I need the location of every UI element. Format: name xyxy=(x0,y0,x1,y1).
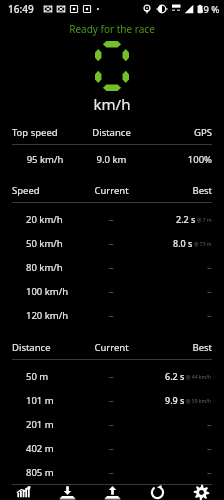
staticText: km/h xyxy=(0,94,224,114)
staticText: 101 m xyxy=(26,394,54,407)
staticText: 201 m xyxy=(26,418,54,431)
staticText: GPS xyxy=(145,126,212,139)
staticText: – xyxy=(207,309,212,321)
button[interactable]: Import xyxy=(45,485,89,500)
staticText: – xyxy=(109,418,114,430)
staticText: 9.9 s xyxy=(165,394,185,406)
staticText: 120 km/h xyxy=(26,309,69,322)
staticText: Best xyxy=(145,184,212,197)
button[interactable]: 805 m xyxy=(0,460,224,484)
staticText: – xyxy=(109,394,114,406)
staticText: – xyxy=(207,261,212,273)
button[interactable]: 402 m xyxy=(0,436,224,460)
button[interactable]: 101 m xyxy=(0,388,224,412)
staticText: Distance xyxy=(78,126,145,139)
staticText: Distance xyxy=(12,341,78,354)
staticText: – xyxy=(109,261,114,273)
staticText: 8.0 s xyxy=(173,237,193,249)
staticText: – xyxy=(109,285,114,297)
staticText: 100 km/h xyxy=(26,285,69,298)
button[interactable]: Statistics xyxy=(1,485,45,500)
button[interactable]: 50 km/h xyxy=(0,231,224,255)
staticText: Top speed xyxy=(12,126,78,139)
staticText: Speed xyxy=(12,184,78,197)
button[interactable]: Export xyxy=(90,485,134,500)
staticText: 100% xyxy=(145,153,212,166)
staticText: – xyxy=(109,237,114,249)
button[interactable]: 80 km/h xyxy=(0,255,224,279)
staticText: 9.0 km xyxy=(78,153,145,166)
staticText: – xyxy=(207,442,212,454)
staticText: Current xyxy=(78,341,145,354)
staticText: – xyxy=(109,213,114,225)
staticText: @ 7 m xyxy=(197,217,212,224)
staticText: 80 km/h xyxy=(26,261,63,274)
staticText: – xyxy=(109,442,114,454)
staticText: – xyxy=(109,466,114,478)
staticText: 805 m xyxy=(26,466,54,479)
staticText: – xyxy=(207,418,212,430)
staticText: Current xyxy=(78,184,145,197)
button[interactable]: 100 km/h xyxy=(0,279,224,303)
button[interactable]: 50 m xyxy=(0,364,224,388)
staticText: 20 km/h xyxy=(26,213,63,226)
staticText: – xyxy=(207,466,212,478)
button[interactable]: Reset xyxy=(135,485,179,500)
staticText: Ready for the race xyxy=(0,22,224,36)
staticText: 6.2 s xyxy=(165,370,185,382)
staticText: 402 m xyxy=(26,442,54,455)
staticText: Best xyxy=(145,341,212,354)
staticText: – xyxy=(109,370,114,382)
button[interactable]: 120 km/h xyxy=(0,303,224,327)
staticText: 50 km/h xyxy=(26,237,63,250)
staticText: 2.2 s xyxy=(176,213,196,225)
staticText: @ 59 km/h xyxy=(186,398,212,405)
staticText: 69 % xyxy=(198,3,220,16)
staticText: 16:49 xyxy=(8,2,34,16)
staticText: @ 73 m xyxy=(194,241,212,248)
button[interactable]: Settings xyxy=(179,485,223,500)
staticText: – xyxy=(109,309,114,321)
staticText: @ 44 km/h xyxy=(186,374,212,381)
staticText: – xyxy=(207,285,212,297)
staticText: 95 km/h xyxy=(12,153,78,166)
staticText: 50 m xyxy=(26,370,49,383)
button[interactable]: 201 m xyxy=(0,412,224,436)
button[interactable]: 20 km/h xyxy=(0,207,224,231)
